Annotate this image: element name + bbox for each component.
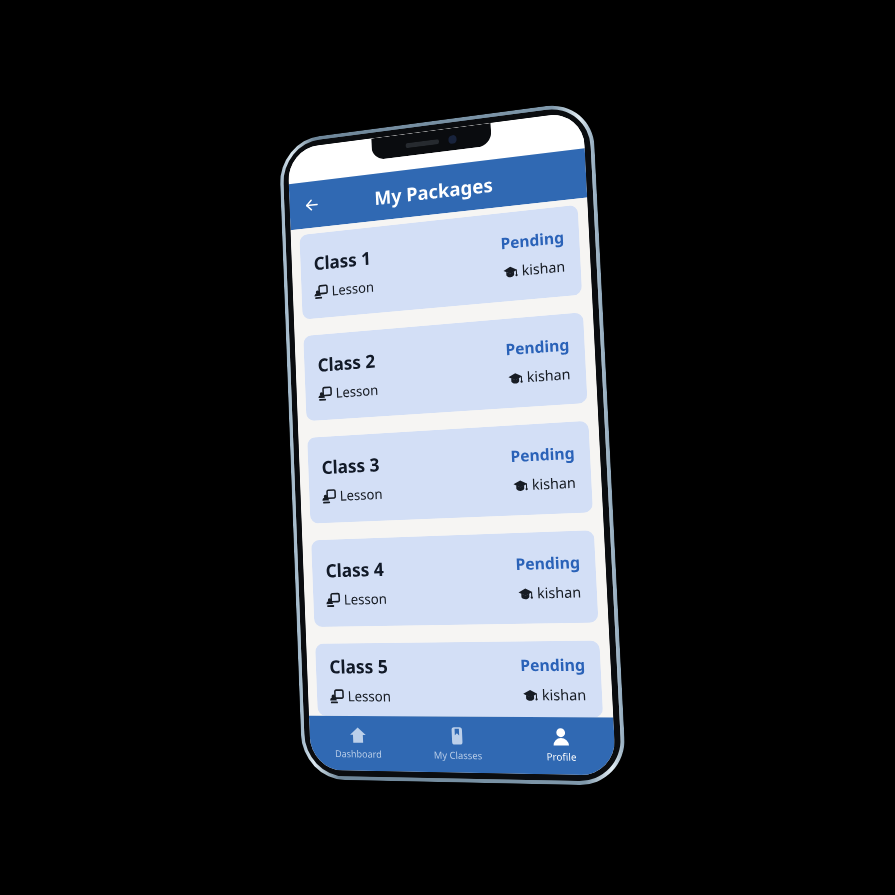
- button[interactable]: Back: [297, 188, 326, 221]
- staticText: kishan: [531, 472, 577, 494]
- staticText: Profile: [546, 749, 577, 764]
- staticText: Lesson: [343, 589, 388, 609]
- button[interactable]: My Classes: [406, 716, 510, 773]
- button[interactable]: Class 5: [315, 640, 603, 717]
- button[interactable]: Class 4: [311, 530, 598, 627]
- staticText: Lesson: [331, 277, 375, 300]
- staticText: My Classes: [433, 748, 483, 762]
- staticText: Class 2: [317, 348, 376, 377]
- staticText: Pending: [510, 442, 575, 467]
- staticText: Pending: [500, 226, 565, 254]
- staticText: kishan: [537, 582, 582, 603]
- button[interactable]: Class 3: [307, 421, 593, 524]
- staticText: Class 5: [329, 653, 389, 678]
- staticText: My Packages: [374, 171, 493, 210]
- staticText: Pending: [505, 334, 570, 360]
- staticText: kishan: [526, 364, 571, 387]
- staticText: kishan: [541, 685, 587, 705]
- staticText: Lesson: [347, 686, 392, 706]
- staticText: Lesson: [339, 484, 383, 505]
- button[interactable]: Class 2: [303, 312, 588, 421]
- button[interactable]: Dashboard: [309, 716, 408, 772]
- staticText: Lesson: [335, 380, 379, 402]
- button[interactable]: Profile: [507, 717, 616, 775]
- button[interactable]: Class 1: [299, 205, 582, 320]
- staticText: Dashboard: [335, 747, 382, 761]
- staticText: Class 4: [325, 556, 385, 582]
- staticText: kishan: [521, 256, 566, 280]
- staticText: Class 3: [321, 451, 380, 479]
- staticText: Pending: [520, 654, 586, 676]
- staticText: Pending: [515, 551, 581, 575]
- staticText: Class 1: [313, 245, 372, 275]
